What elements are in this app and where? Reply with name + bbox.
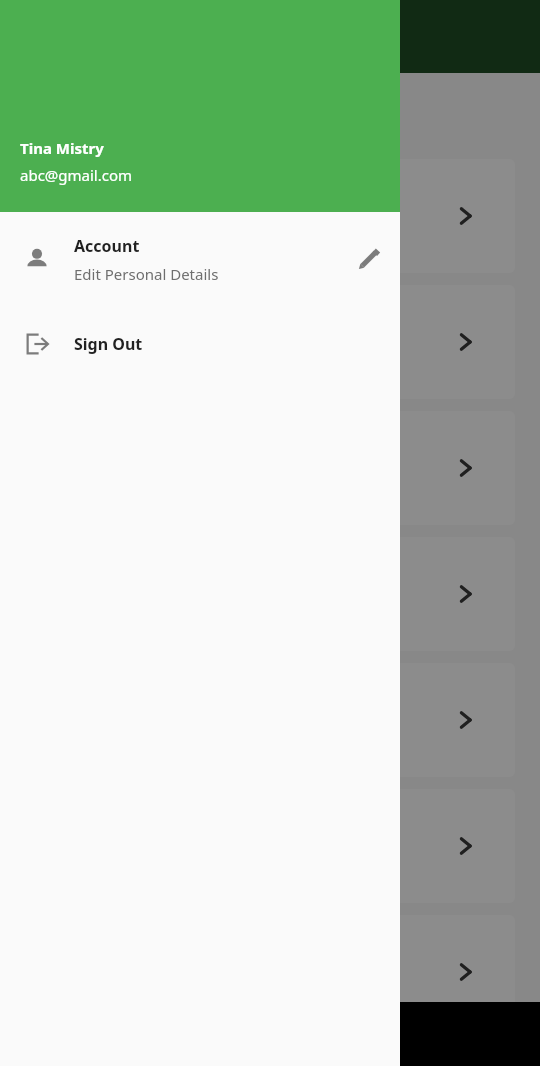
staticText: Tina Mistry [20,138,104,158]
staticText: Sign Out [74,333,143,355]
button[interactable]: Account [0,212,400,306]
button[interactable] [25,159,515,273]
button[interactable] [25,285,515,399]
staticText: Account [74,235,140,257]
button[interactable]: Edit personal details [338,228,400,290]
button[interactable]: Sign Out [0,306,400,382]
button[interactable] [0,0,540,1066]
button[interactable] [25,537,515,651]
button[interactable] [25,915,515,1029]
staticText: abc@gmail.com [20,165,133,185]
button[interactable] [25,789,515,903]
button[interactable] [25,1041,515,1066]
button[interactable] [25,663,515,777]
button[interactable] [25,411,515,525]
staticText: Edit Personal Details [74,264,219,284]
